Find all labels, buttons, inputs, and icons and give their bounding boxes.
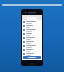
button[interactable]	[22, 28, 42, 32]
button[interactable]	[22, 24, 42, 28]
button[interactable]	[22, 32, 42, 36]
button[interactable]	[22, 36, 42, 40]
button[interactable]	[22, 48, 42, 52]
button[interactable]	[22, 20, 42, 24]
button[interactable]	[22, 52, 42, 56]
button[interactable]	[22, 40, 42, 44]
button[interactable]	[22, 44, 42, 48]
button[interactable]: Submit	[23, 56, 41, 59]
